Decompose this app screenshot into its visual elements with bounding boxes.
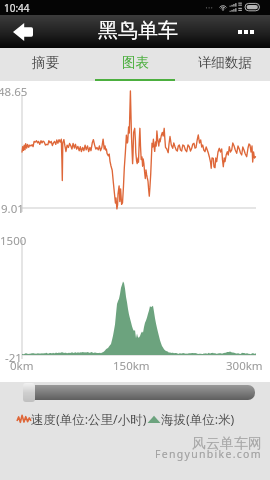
staticText: 48.65 xyxy=(0,84,28,100)
staticText: 300km xyxy=(226,358,263,374)
staticText: 速度(单位:公里/小时) xyxy=(31,411,147,428)
button[interactable]: 图表 xyxy=(90,48,180,81)
button[interactable]: Back xyxy=(6,15,40,48)
staticText: 9.01 xyxy=(1,201,24,217)
staticText: -21 xyxy=(5,350,22,366)
staticText: 0km xyxy=(10,358,34,374)
staticText: 详细数据 xyxy=(198,54,252,71)
button[interactable]: Slider handle xyxy=(23,383,35,402)
button[interactable]: 摘要 xyxy=(0,48,90,81)
staticText: 1500 xyxy=(0,233,27,249)
staticText: 海拔(单位:米) xyxy=(161,411,235,428)
staticText: 黑鸟单车 xyxy=(98,18,178,43)
staticText: 风云单车网 xyxy=(192,435,262,453)
staticText: 图表 xyxy=(122,54,149,71)
button[interactable]: Range slider xyxy=(25,385,255,400)
button[interactable]: More options xyxy=(230,15,262,48)
staticText: Fengyunbike.com xyxy=(155,447,262,461)
staticText: 150km xyxy=(113,358,150,374)
button[interactable]: 详细数据 xyxy=(180,48,270,81)
staticText: 10:44 xyxy=(4,1,30,15)
staticText: 摘要 xyxy=(32,54,59,71)
